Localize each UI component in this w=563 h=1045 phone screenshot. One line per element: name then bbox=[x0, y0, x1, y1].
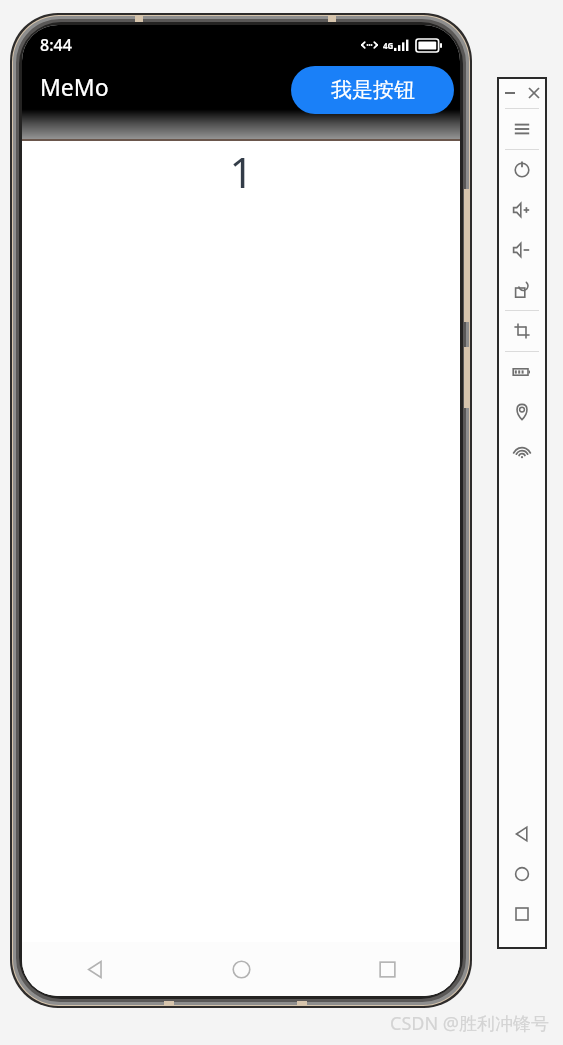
button[interactable]: Volume up bbox=[498, 190, 546, 230]
button[interactable]: Screenshot bbox=[498, 311, 546, 351]
button[interactable]: Back bbox=[498, 814, 546, 854]
button[interactable]: Rotate right bbox=[498, 270, 546, 310]
staticText: 4G bbox=[383, 40, 394, 51]
button[interactable]: Recents bbox=[314, 942, 460, 996]
button[interactable]: 我是按钮 bbox=[291, 66, 454, 114]
button[interactable]: Wi-Fi bbox=[498, 432, 546, 472]
button[interactable]: Menu bbox=[498, 109, 546, 149]
button[interactable]: Volume down bbox=[498, 230, 546, 270]
button[interactable]: Minimize bbox=[498, 78, 522, 108]
staticText: 我是按钮 bbox=[331, 77, 415, 103]
button[interactable]: Battery bbox=[498, 352, 546, 392]
button[interactable]: Back bbox=[22, 942, 168, 996]
staticText: 1 bbox=[229, 143, 254, 200]
button[interactable]: Location bbox=[498, 392, 546, 432]
staticText: MeMo bbox=[40, 71, 109, 102]
button[interactable]: Close bbox=[522, 78, 546, 108]
button[interactable]: Home bbox=[168, 942, 314, 996]
button[interactable]: Power bbox=[498, 150, 546, 190]
staticText: 8:44 bbox=[40, 34, 72, 56]
button[interactable]: Recents bbox=[498, 894, 546, 934]
staticText: CSDN @胜利冲锋号 bbox=[390, 1011, 549, 1036]
button[interactable]: Home bbox=[498, 854, 546, 894]
